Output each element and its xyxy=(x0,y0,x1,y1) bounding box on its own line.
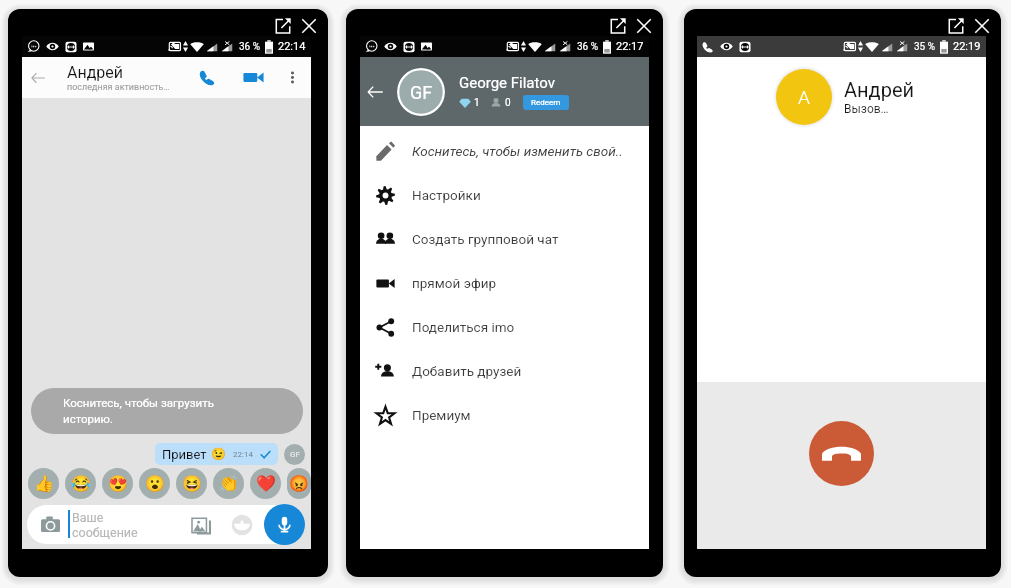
staticText: GF xyxy=(290,450,300,459)
button[interactable]: More options xyxy=(273,57,311,98)
button[interactable]: Настройки xyxy=(360,173,649,217)
button[interactable]: Close xyxy=(973,17,990,34)
staticText: прямой эфир xyxy=(412,275,497,291)
button[interactable]: Коснитесь, чтобы загрузить историю. xyxy=(31,388,303,434)
staticText: ❤️ xyxy=(256,474,276,493)
staticText: 36 % xyxy=(577,41,599,53)
staticText: Андрей xyxy=(67,63,124,82)
button[interactable]: Video call xyxy=(233,57,273,98)
staticText: Добавить друзей xyxy=(412,363,522,379)
button[interactable]: Коснитесь, чтобы изменить свой.. xyxy=(360,129,649,173)
button[interactable]: Close xyxy=(300,17,317,34)
staticText: Поделиться imo xyxy=(412,319,515,335)
staticText: Redeem xyxy=(531,98,561,107)
button[interactable]: 😍 xyxy=(102,468,133,499)
staticText: 😮 xyxy=(145,474,165,493)
staticText: Ваше сообщение xyxy=(72,510,138,540)
button[interactable]: Open in new window xyxy=(609,17,626,34)
staticText: Настройки xyxy=(412,187,481,203)
staticText: Коснитесь, чтобы изменить свой.. xyxy=(412,143,623,159)
button[interactable]: Поделиться imo xyxy=(360,305,649,349)
button[interactable]: Back xyxy=(22,57,53,98)
staticText: 22:14 xyxy=(233,450,253,459)
staticText: Андрей xyxy=(844,78,915,101)
button[interactable]: Close xyxy=(635,17,652,34)
button[interactable]: End call xyxy=(809,421,874,486)
staticText: A xyxy=(798,86,810,108)
button[interactable]: Создать групповой чат xyxy=(360,217,649,261)
button[interactable]: Camera xyxy=(32,504,68,545)
staticText: Коснитесь, чтобы загрузить историю. xyxy=(63,396,214,425)
staticText: 😆 xyxy=(182,474,202,493)
staticText: 👍 xyxy=(34,474,54,493)
staticText: 1 xyxy=(474,97,480,109)
button[interactable]: GF xyxy=(397,68,445,116)
button[interactable]: 😮 xyxy=(139,468,170,499)
staticText: Создать групповой чат xyxy=(412,231,559,247)
button[interactable]: Open in new window xyxy=(274,17,291,34)
button[interactable]: 😡 xyxy=(287,468,311,499)
button[interactable]: Stickers xyxy=(230,513,254,537)
staticText: 😡 xyxy=(289,474,309,493)
button[interactable]: GF xyxy=(284,444,305,465)
staticText: Премиум xyxy=(412,407,471,423)
staticText: 22:14 xyxy=(278,40,306,53)
button[interactable]: Добавить друзей xyxy=(360,349,649,393)
button[interactable]: 😆 xyxy=(176,468,207,499)
button[interactable]: 😂 xyxy=(65,468,96,499)
staticText: 0 xyxy=(505,97,511,109)
staticText: 35 % xyxy=(914,41,936,53)
staticText: последняя активность… xyxy=(67,82,170,93)
button[interactable]: Привет xyxy=(155,443,278,465)
button[interactable]: Gallery xyxy=(188,512,214,538)
button[interactable]: Open in new window xyxy=(947,17,964,34)
staticText: 36 % xyxy=(239,41,261,53)
button[interactable]: ❤️ xyxy=(250,468,281,499)
button[interactable]: Back xyxy=(360,57,390,126)
button[interactable]: 👍 xyxy=(28,468,59,499)
button[interactable]: Voice message xyxy=(264,504,305,545)
button[interactable]: Премиум xyxy=(360,393,649,437)
staticText: 😂 xyxy=(71,474,91,493)
staticText: 22:17 xyxy=(616,40,644,53)
staticText: GF xyxy=(410,82,433,103)
staticText: Вызов… xyxy=(844,102,889,116)
staticText: Привет xyxy=(162,447,207,462)
button[interactable]: 👏 xyxy=(213,468,244,499)
button[interactable]: прямой эфир xyxy=(360,261,649,305)
staticText: 22:19 xyxy=(953,40,981,53)
staticText: 😉 xyxy=(211,447,226,461)
staticText: 😍 xyxy=(108,474,128,493)
staticText: George Filatov xyxy=(459,74,555,92)
button[interactable]: Call xyxy=(187,57,227,98)
button[interactable]: Redeem xyxy=(523,95,569,110)
staticText: 👏 xyxy=(219,474,239,493)
